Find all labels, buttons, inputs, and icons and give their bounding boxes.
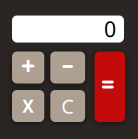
staticText: C bbox=[61, 93, 74, 119]
button[interactable]: Add bbox=[12, 51, 44, 83]
staticText: X bbox=[22, 94, 34, 117]
button[interactable]: Clear bbox=[50, 90, 85, 122]
button[interactable]: Equals bbox=[95, 51, 125, 122]
button[interactable]: Multiply bbox=[12, 90, 44, 122]
staticText: 0 bbox=[104, 15, 116, 43]
button[interactable]: Subtract bbox=[50, 51, 85, 83]
